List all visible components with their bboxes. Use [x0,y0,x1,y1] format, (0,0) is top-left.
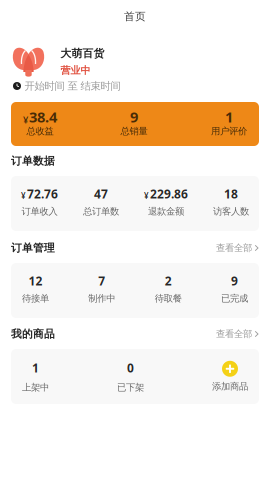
button[interactable]: 查看全部 [216,242,259,254]
staticText: 总销量 [120,125,147,137]
staticText: 总订单数 [83,206,119,217]
staticText: 0 [127,360,134,376]
staticText: ¥ [144,191,149,201]
staticText: 查看全部 [216,328,252,340]
staticText: 我的商品 [11,327,55,340]
button[interactable]: 12 [22,273,49,304]
staticText: 18 [224,186,238,202]
staticText: ¥ [21,191,26,201]
staticText: 38.4 [29,107,57,126]
staticText: 1 [225,107,233,126]
staticText: 2 [165,273,172,289]
staticText: 上架中 [22,382,49,393]
staticText: 订单收入 [21,206,57,217]
staticText: 12 [28,273,42,289]
staticText: 已下架 [117,382,144,393]
staticText: 用户评价 [211,125,247,137]
button[interactable]: 7 [88,273,115,304]
button[interactable]: 添加商品 [212,361,248,392]
staticText: 订单管理 [11,241,55,254]
staticText: 开始时间 至 结束时间 [24,79,120,92]
staticText: 72.76 [27,186,58,202]
staticText: 229.86 [150,186,188,202]
staticText: 已完成 [221,293,248,304]
button[interactable]: 查看全部 [216,328,259,340]
staticText: 订单数据 [11,154,55,167]
staticText: 待取餐 [155,293,182,304]
staticText: 1 [32,360,39,376]
staticText: 待接单 [22,293,49,304]
button[interactable]: 2 [155,273,182,304]
staticText: 47 [94,186,108,202]
staticText: 制作中 [88,293,115,304]
staticText: 查看全部 [216,242,252,254]
staticText: 首页 [124,10,146,23]
button[interactable]: 0 [117,360,144,393]
staticText: 9 [130,107,138,126]
staticText: 总收益 [26,125,53,137]
button[interactable]: 1 [22,360,49,393]
staticText: 9 [231,273,238,289]
staticText: 访客人数 [213,206,249,217]
staticText: 大萌百货 [60,47,104,60]
staticText: ¥ [23,114,28,126]
staticText: 营业中 [60,64,90,77]
button[interactable]: 9 [221,273,248,304]
staticText: 添加商品 [212,381,248,392]
staticText: 7 [98,273,105,289]
staticText: 退款金额 [148,206,184,217]
